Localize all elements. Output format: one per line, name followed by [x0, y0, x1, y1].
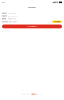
staticText: Jun 14 · 3:42 PM — [8, 15, 17, 17]
staticText: 9:41 — [2, 1, 5, 3]
staticText: · Terms — [38, 93, 43, 95]
button[interactable]: SwiftPay — [31, 93, 37, 95]
staticText: PENDING — [54, 21, 60, 23]
staticText: Items — [2, 18, 6, 20]
staticText: #10238-AB — [8, 12, 16, 14]
staticText: Placed — [2, 15, 7, 17]
staticText: Powered by — [21, 93, 30, 95]
staticText: Out for delivery — [8, 21, 18, 23]
staticText: Track Delivery — [26, 26, 37, 27]
staticText: SwiftPay — [31, 93, 37, 95]
staticText: 3 items · 2.4 kg — [8, 18, 16, 20]
staticText: Order — [2, 12, 7, 14]
staticText: Checkout — [28, 6, 36, 8]
button[interactable]: Track Delivery — [2, 24, 62, 28]
staticText: Status — [2, 21, 8, 23]
